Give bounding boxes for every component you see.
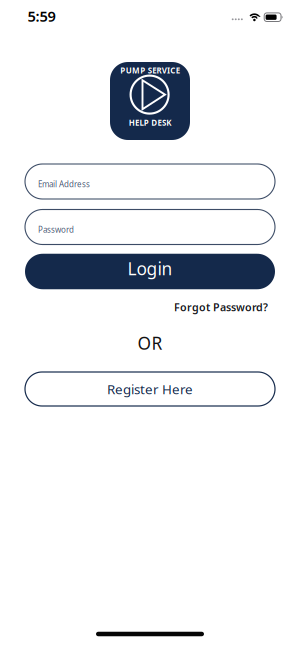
staticText: OR xyxy=(137,331,162,354)
staticText: Forgot Password? xyxy=(174,300,268,314)
staticText: PUMP SERVICE xyxy=(120,65,180,76)
button[interactable]: Register Here xyxy=(25,372,275,406)
staticText: Register Here xyxy=(107,380,193,398)
button[interactable]: Password xyxy=(25,209,275,244)
button[interactable]: Email Address xyxy=(25,164,275,199)
staticText: Password xyxy=(38,224,74,235)
staticText: Login xyxy=(127,257,172,280)
button[interactable]: Login xyxy=(25,254,275,289)
staticText: HELP DESK xyxy=(129,117,171,128)
button[interactable]: Forgot Password? xyxy=(174,300,268,314)
staticText: Email Address xyxy=(38,179,90,189)
staticText: 5:59 xyxy=(27,6,55,26)
